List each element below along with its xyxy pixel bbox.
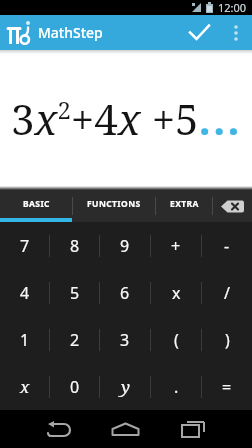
staticText: BASIC [23, 198, 50, 210]
button[interactable]: . [151, 363, 201, 410]
staticText: y [121, 375, 130, 398]
staticText: FUNCTIONS [87, 198, 141, 210]
staticText: - [224, 235, 230, 257]
button[interactable]: BASIC [0, 190, 72, 222]
staticText: 1 [20, 329, 30, 351]
button[interactable] [213, 190, 252, 222]
button[interactable]: EXTRA [156, 190, 212, 222]
button[interactable] [26, 410, 92, 448]
button[interactable]: 3 [100, 316, 150, 363]
button[interactable] [220, 15, 252, 50]
staticText: 7 [20, 235, 30, 257]
staticText: 4 [20, 282, 30, 304]
staticText: 6 [120, 282, 130, 304]
button[interactable] [92, 410, 159, 448]
staticText: 0 [70, 376, 80, 398]
staticText: 2 [70, 329, 80, 351]
button[interactable]: 1 [0, 316, 49, 363]
staticText: 3x2+4x +5... [11, 90, 242, 147]
button[interactable]: 4 [0, 269, 49, 316]
button[interactable]: / [202, 269, 252, 316]
button[interactable]: y [100, 363, 150, 410]
staticText: 3 [120, 329, 130, 351]
button[interactable] [178, 15, 220, 50]
staticText: 5 [70, 282, 80, 304]
button[interactable]: 5 [50, 269, 99, 316]
staticText: 9 [120, 235, 130, 257]
staticText: MathStep [38, 23, 103, 42]
staticText: + [171, 235, 181, 257]
button[interactable]: x [0, 363, 49, 410]
staticText: = [222, 376, 232, 398]
staticText: 8 [70, 235, 80, 257]
button[interactable]: = [202, 363, 252, 410]
button[interactable]: ) [202, 316, 252, 363]
staticText: ) [225, 329, 230, 351]
button[interactable]: ( [151, 316, 201, 363]
button[interactable]: 9 [100, 222, 150, 269]
button[interactable]: x [151, 269, 201, 316]
staticText: EXTRA [170, 198, 199, 210]
staticText: x [172, 282, 181, 304]
staticText: ( [174, 329, 179, 351]
button[interactable]: 8 [50, 222, 99, 269]
staticText: x [20, 375, 30, 398]
button[interactable]: 2 [50, 316, 99, 363]
button[interactable] [159, 410, 226, 448]
staticText: . [174, 376, 179, 398]
staticText: / [224, 282, 230, 304]
button[interactable]: FUNCTIONS [73, 190, 155, 222]
button[interactable]: - [202, 222, 252, 269]
button[interactable]: 6 [100, 269, 150, 316]
button[interactable]: + [151, 222, 201, 269]
staticText: 12:00 [218, 0, 247, 15]
button[interactable]: 0 [50, 363, 99, 410]
button[interactable]: 7 [0, 222, 49, 269]
